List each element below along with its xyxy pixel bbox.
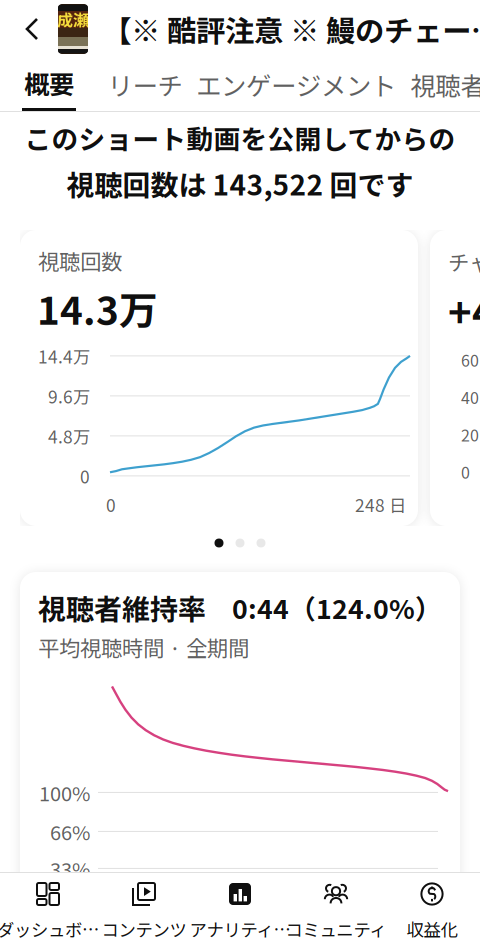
staticText: 14.4万 — [38, 343, 90, 368]
staticText: 平均視聴時間 · 全期間 — [38, 631, 249, 662]
button[interactable]: エンゲージメント — [192, 59, 400, 109]
staticText: 14.3万 — [37, 280, 158, 336]
staticText: 収益化 — [406, 916, 457, 942]
staticText: 視聴者 — [410, 66, 480, 103]
staticText: エンゲージメント — [196, 66, 396, 103]
staticText: 60 — [461, 348, 479, 371]
staticText: 0 — [461, 460, 470, 483]
button[interactable]: コンテンツ — [96, 873, 192, 939]
button[interactable]: 視聴者 — [400, 59, 480, 109]
button[interactable]: 戻る — [6, 0, 58, 58]
staticText: リーチ — [107, 66, 182, 103]
staticText: コミュニティ — [285, 916, 386, 942]
staticText: 0 — [80, 463, 90, 488]
staticText: チャ — [448, 246, 480, 277]
staticText: コンテンツ — [101, 916, 186, 942]
staticText: 20 — [461, 423, 479, 446]
button[interactable]: リーチ — [98, 59, 192, 109]
staticText: 9.6万 — [48, 383, 90, 408]
staticText: 0:44（124.0%） — [232, 588, 442, 627]
button[interactable]: コミュニティ — [288, 873, 384, 939]
staticText: +4 — [448, 281, 480, 339]
button[interactable]: ダッシュボ… — [0, 873, 96, 939]
staticText: 視聴者維持率 — [38, 587, 206, 627]
staticText: 0 — [106, 492, 116, 517]
staticText: 66% — [50, 817, 90, 846]
staticText: アナリティ… — [189, 916, 290, 942]
staticText: ダッシュボ… — [0, 916, 99, 942]
staticText: 視聴回数 — [38, 245, 122, 276]
button[interactable]: 概要 — [0, 58, 98, 111]
staticText: このショート動画を公開してからの — [24, 118, 455, 157]
staticText: 33% — [50, 854, 90, 883]
staticText: 視聴回数は 143,522 回です — [66, 163, 413, 203]
staticText: 100% — [39, 778, 90, 807]
staticText: 40 — [461, 386, 479, 409]
button[interactable]: 収益化 — [384, 873, 480, 939]
button[interactable]: アナリティ… — [192, 873, 288, 939]
staticText: 4.8万 — [48, 423, 90, 448]
button[interactable]: 【※ 酷評注意 ※ 鰻のチェー… — [88, 0, 480, 58]
staticText: 248 日 — [355, 492, 406, 517]
staticText: 概要 — [24, 65, 74, 101]
staticText: 【※ 酷評注意 ※ 鰻のチェー… — [102, 8, 480, 50]
staticText: 成瀬 — [57, 8, 89, 31]
